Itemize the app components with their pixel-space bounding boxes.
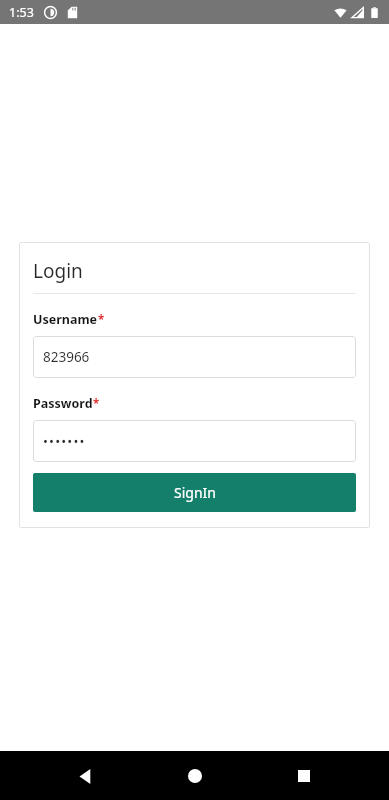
staticText: ••••••• [43, 432, 86, 450]
staticText: * [98, 312, 105, 328]
staticText: Login [33, 258, 83, 284]
button[interactable]: 823966 [33, 336, 356, 378]
staticText: Username [33, 311, 98, 328]
button[interactable]: Home [171, 752, 219, 800]
button[interactable]: Recent apps [280, 752, 328, 800]
staticText: 823966 [43, 348, 90, 366]
button[interactable]: SignIn [33, 473, 356, 512]
staticText: Password [33, 395, 93, 412]
button[interactable]: Back [61, 752, 109, 800]
staticText: 1:53 [9, 4, 34, 21]
button[interactable]: ••••••• [33, 420, 356, 462]
staticText: SignIn [174, 483, 216, 502]
staticText: * [93, 396, 100, 412]
